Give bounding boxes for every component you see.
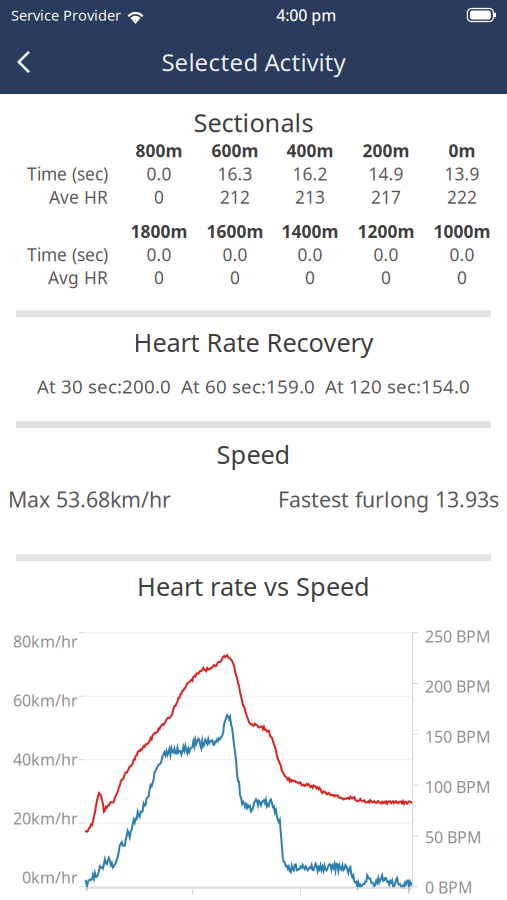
- staticText: 50 BPM: [425, 826, 482, 848]
- staticText: 0: [154, 266, 164, 289]
- staticText: Service Provider: [11, 5, 121, 25]
- staticText: 1400m: [281, 220, 338, 243]
- staticText: 200 BPM: [425, 676, 491, 697]
- staticText: 1200m: [357, 220, 414, 243]
- staticText: Speed: [216, 437, 290, 471]
- staticText: Avg HR: [48, 266, 108, 289]
- staticText: 16.3: [217, 162, 252, 185]
- staticText: 217: [371, 185, 401, 208]
- staticText: 213: [295, 185, 325, 208]
- staticText: 0 BPM: [425, 877, 473, 898]
- staticText: 0: [230, 266, 240, 289]
- staticText: 0: [457, 266, 467, 289]
- staticText: 14.9: [368, 162, 403, 185]
- staticText: 40km/hr: [13, 749, 78, 770]
- staticText: Fastest furlong 13.93s: [278, 485, 499, 513]
- staticText: Selected Activity: [161, 46, 345, 78]
- staticText: 0.0: [297, 243, 322, 266]
- staticText: Max 53.68km/hr: [8, 485, 171, 513]
- staticText: 250 BPM: [425, 626, 491, 647]
- staticText: 0km/hr: [22, 867, 78, 888]
- staticText: 0: [381, 266, 391, 289]
- staticText: 0.0: [373, 243, 398, 266]
- staticText: 150 BPM: [425, 726, 491, 747]
- staticText: 100 BPM: [425, 776, 491, 797]
- staticText: Time (sec): [27, 162, 108, 185]
- staticText: 60km/hr: [13, 690, 78, 711]
- staticText: 400m: [286, 139, 333, 162]
- staticText: Heart rate vs Speed: [137, 569, 370, 603]
- button[interactable]: Back: [0, 36, 48, 88]
- staticText: 0.0: [146, 162, 171, 185]
- staticText: 0.0: [222, 243, 247, 266]
- staticText: 4:00 pm: [276, 4, 336, 26]
- staticText: 600m: [211, 139, 258, 162]
- staticText: 0.0: [449, 243, 474, 266]
- staticText: 80km/hr: [13, 631, 78, 652]
- staticText: 1600m: [206, 220, 263, 243]
- staticText: 0: [305, 266, 315, 289]
- staticText: 212: [220, 185, 250, 208]
- staticText: 0.0: [146, 243, 171, 266]
- staticText: 0: [154, 185, 164, 208]
- staticText: 0m: [448, 139, 475, 162]
- staticText: 200m: [362, 139, 409, 162]
- staticText: 13.9: [444, 162, 479, 185]
- staticText: Time (sec): [27, 243, 108, 266]
- staticText: Heart Rate Recovery: [133, 325, 373, 359]
- staticText: 1800m: [130, 220, 187, 243]
- staticText: Ave HR: [49, 185, 108, 208]
- staticText: 20km/hr: [13, 808, 78, 829]
- staticText: 1000m: [433, 220, 490, 243]
- staticText: 800m: [135, 139, 182, 162]
- staticText: 222: [447, 185, 477, 208]
- staticText: Sectionals: [193, 106, 313, 139]
- staticText: At 30 sec:200.0 At 60 sec:159.0 At 120 s…: [37, 374, 470, 399]
- staticText: 16.2: [292, 162, 327, 185]
